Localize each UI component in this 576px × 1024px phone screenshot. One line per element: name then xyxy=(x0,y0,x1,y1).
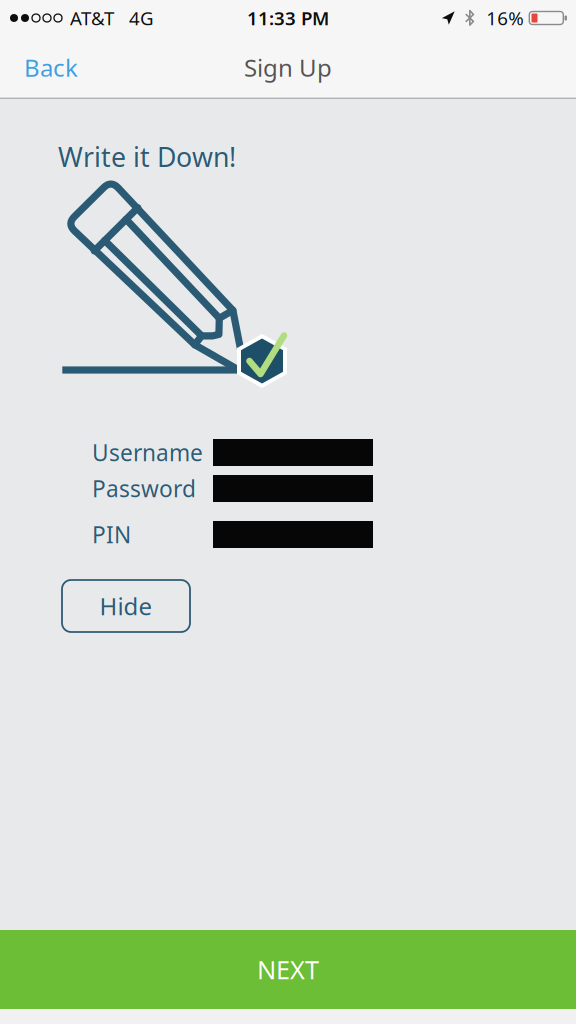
staticText: Write it Down! xyxy=(58,139,236,174)
staticText: Sign Up xyxy=(244,52,332,83)
staticText: 11:33 PM xyxy=(247,6,329,30)
staticText: NEXT xyxy=(257,953,319,986)
button[interactable]: NEXT xyxy=(0,930,576,1009)
staticText: AT&T xyxy=(70,6,114,30)
staticText: PIN xyxy=(92,519,131,549)
button[interactable]: Hide xyxy=(62,580,190,632)
button[interactable]: Back xyxy=(0,36,121,99)
staticText: Back xyxy=(24,52,78,83)
staticText: 4G xyxy=(129,6,154,30)
staticText: Password xyxy=(92,473,196,503)
staticText: Hide xyxy=(99,590,152,622)
staticText: 16% xyxy=(486,6,524,30)
staticText: Username xyxy=(92,437,203,467)
